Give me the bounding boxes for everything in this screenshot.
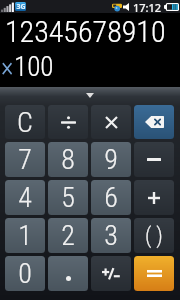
button[interactable]: C <box>5 105 45 139</box>
staticText: × <box>1 51 14 83</box>
staticText: 2 <box>61 219 75 252</box>
button[interactable]: Subtract <box>134 142 174 177</box>
button[interactable]: 8 <box>48 142 88 177</box>
staticText: 3 <box>104 219 118 252</box>
staticText: 8 <box>61 143 75 176</box>
button[interactable]: Parentheses <box>134 218 174 253</box>
button[interactable]: 9 <box>91 142 131 177</box>
staticText: 5 <box>61 181 75 214</box>
staticText: 9 <box>104 143 118 176</box>
staticText: 6 <box>104 181 118 214</box>
staticText: 3G <box>16 2 26 11</box>
button[interactable]: Backspace <box>134 105 174 139</box>
button[interactable]: Divide <box>48 105 88 139</box>
staticText: ( ) <box>145 223 163 249</box>
staticText: 4 <box>18 181 32 214</box>
button[interactable]: Decimal point <box>48 256 88 291</box>
button[interactable]: 4 <box>5 180 45 215</box>
button[interactable]: 7 <box>5 142 45 177</box>
button[interactable]: Add <box>134 180 174 215</box>
button[interactable]: 6 <box>91 180 131 215</box>
button[interactable]: 0 <box>5 256 45 291</box>
staticText: 17:12 <box>133 0 162 13</box>
button[interactable]: Multiply <box>91 105 131 139</box>
staticText: 1 <box>18 219 32 252</box>
button[interactable]: 5 <box>48 180 88 215</box>
button[interactable]: 3 <box>91 218 131 253</box>
staticText: 0 <box>18 257 32 290</box>
staticText: 12345678910 <box>5 14 166 49</box>
button[interactable]: 2 <box>48 218 88 253</box>
staticText: 100 <box>14 51 54 83</box>
button[interactable]: Equals <box>134 256 174 291</box>
button[interactable]: Plus minus <box>91 256 131 291</box>
button[interactable]: 1 <box>5 218 45 253</box>
staticText: 7 <box>18 143 32 176</box>
staticText: C <box>17 106 33 139</box>
